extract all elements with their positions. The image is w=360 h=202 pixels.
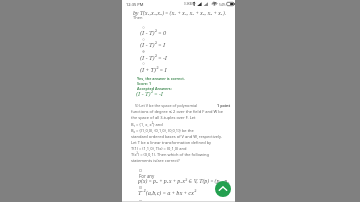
staticText: 1 point [217, 103, 231, 108]
staticText: statements is/are correct? [131, 158, 180, 163]
staticText: 12:35 PM [126, 2, 144, 7]
staticText: Accepted Answers: [137, 86, 172, 91]
staticText: 5) Let V be the space of polynomial [135, 103, 198, 108]
staticText: 0.3KB/s [184, 2, 195, 6]
staticText: B₁ = {1, x, x²} and [131, 122, 163, 127]
button[interactable]: Select option [142, 62, 145, 65]
staticText: (I − T)² = −I [136, 90, 164, 98]
staticText: Yes, the answer is correct. [137, 76, 185, 81]
staticText: (I − T)² = I [140, 41, 166, 49]
staticText: (I − T)² = −I [140, 54, 168, 62]
staticText: T(1) = (1,1,0), T(x) = (0,1,0) and [131, 146, 187, 151]
button[interactable]: Select option [142, 38, 145, 41]
staticText: For any [139, 173, 155, 179]
staticText: functions of degree ≤ 2 over the field F… [131, 109, 223, 114]
button[interactable]: Toggle checkbox [139, 169, 142, 172]
staticText: Score: 1 [137, 81, 152, 86]
staticText: (I − T)² = 0 [140, 29, 167, 37]
staticText: Let T be a linear transformation defined… [131, 140, 212, 145]
staticText: 54% [219, 2, 226, 6]
staticText: Then [133, 15, 143, 20]
staticText: B₂ = {(1,0,0), (0,1,0), (0,0,1)} be the [131, 128, 194, 133]
button[interactable]: Select option [142, 50, 145, 53]
button[interactable]: Scroll to top [215, 181, 231, 197]
staticText: T⁻¹(a,b,c) = a + bx + cx² [138, 189, 197, 196]
button[interactable]: Select option [142, 26, 145, 29]
button[interactable]: Toggle checkbox [139, 186, 142, 189]
button[interactable]: Toggle checkbox [139, 200, 142, 202]
staticText: the space of all 3-tuples over F. Let [131, 115, 196, 120]
staticText: standard ordered bases of V and W, respe… [131, 134, 222, 139]
staticText: p(x) = p₀ + p₁x + p₂x² ∈ V, T(p) = (p₀, … [138, 177, 230, 184]
staticText: (I + T)² = I [140, 66, 167, 74]
staticText: by T(x₁,x₂,x₃) = (x₁ + x₂, x₂ + x₃, x₃ +… [133, 9, 226, 16]
staticText: T(x²) = (0,0,1). Then which of the follo… [131, 152, 209, 157]
